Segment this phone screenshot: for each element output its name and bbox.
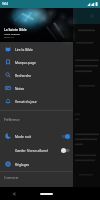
staticText: Louis Segond: [4, 32, 20, 35]
staticText: 9:04: [2, 2, 8, 6]
button[interactable]: Recherche: [0, 68, 73, 81]
button[interactable]: Lire la Bible: [0, 42, 73, 55]
staticText: Recherche: [15, 73, 32, 77]
staticText: Marque-page: [15, 60, 36, 64]
staticText: Verset du jour: [15, 99, 37, 103]
other: Back: [12, 192, 16, 196]
staticText: Préférence: [4, 118, 20, 122]
button[interactable]: Mode nuit: [0, 129, 73, 143]
staticText: Connecter: [4, 176, 19, 180]
staticText: La Sainte Bible: [4, 27, 27, 31]
staticText: Notes: [15, 86, 25, 90]
staticText: Mode nuit: [15, 134, 61, 138]
staticText: Lire la Bible: [15, 47, 33, 51]
button[interactable]: Réglages: [0, 157, 73, 171]
button[interactable]: Verset du jour: [0, 94, 73, 107]
staticText: Garder l'écran allumé: [15, 148, 61, 152]
button[interactable]: Garder l'écran allumé: [0, 143, 73, 157]
button[interactable]: Marque-page: [0, 55, 73, 68]
staticText: Réglages: [15, 162, 30, 166]
button[interactable]: Notes: [0, 81, 73, 94]
other: Search: [90, 14, 94, 18]
staticText: version 1.6: [4, 36, 14, 39]
